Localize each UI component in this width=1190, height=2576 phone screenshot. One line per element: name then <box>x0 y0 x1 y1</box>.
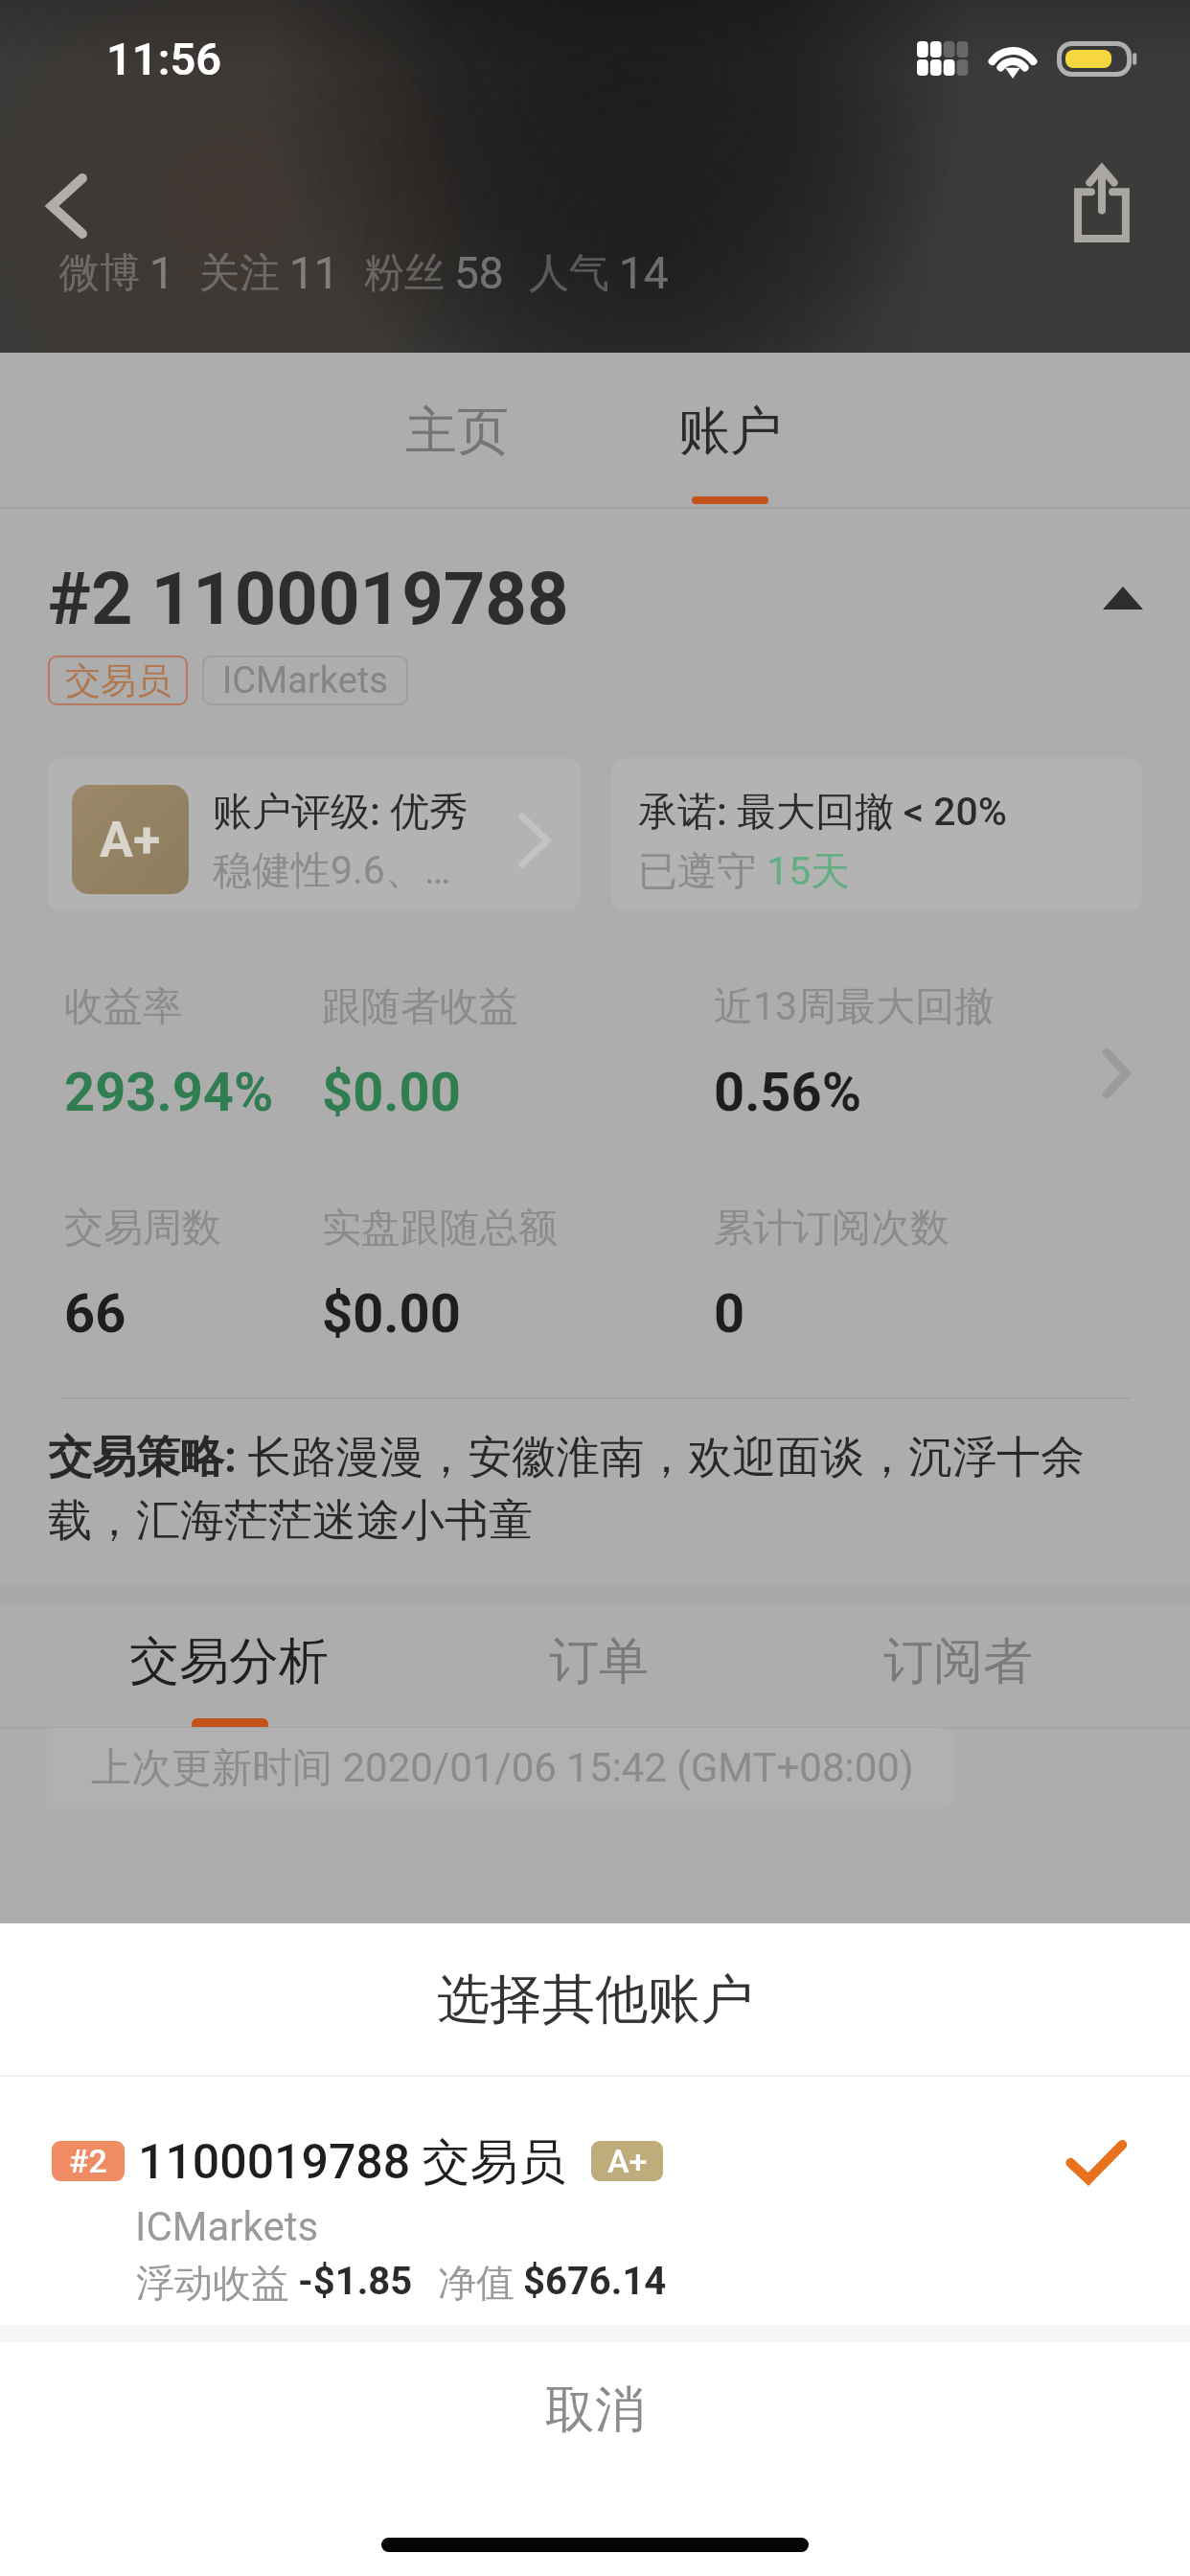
staticText: #2 <box>69 2142 107 2180</box>
button[interactable]: 承诺: 最大回撤 < 20% <box>611 758 1142 911</box>
staticText: 上次更新时间 2020/01/06 15:42 (GMT+08:00) <box>91 1743 914 1794</box>
button[interactable]: Collapse account <box>1079 554 1167 642</box>
staticText: 账户 <box>678 399 782 464</box>
staticText: 交易周数 <box>64 1204 221 1253</box>
staticText: 稳健性9.6、… <box>213 846 451 896</box>
button[interactable]: Back <box>21 160 113 252</box>
staticText: 11 <box>289 247 339 299</box>
staticText: 15天 <box>767 847 851 897</box>
staticText: 关注 <box>199 248 280 299</box>
staticText: $676.14 <box>523 2259 667 2304</box>
staticText: -$1.85 <box>298 2259 413 2304</box>
staticText: 累计订阅次数 <box>714 1204 950 1253</box>
staticText: 收益率 <box>64 982 182 1032</box>
button[interactable]: Selected account <box>1052 2118 1140 2206</box>
staticText: 0 <box>714 1282 745 1345</box>
button[interactable]: 订阅者 <box>853 1604 1064 1719</box>
button[interactable]: 交易分析 <box>124 1604 334 1719</box>
button[interactable]: 取消 <box>0 2338 1190 2482</box>
staticText: 订阅者 <box>883 1630 1033 1693</box>
button[interactable]: 选择其他账户 <box>0 1923 1190 2075</box>
staticText: 净值 <box>438 2259 515 2307</box>
staticText: 跟随者收益 <box>322 982 518 1032</box>
staticText: 1 <box>149 247 174 299</box>
staticText: 交易员 <box>65 658 172 703</box>
staticText: 66 <box>64 1282 126 1345</box>
staticText: 58 <box>454 247 504 299</box>
staticText: 实盘跟随总额 <box>322 1204 558 1253</box>
staticText: 293.94% <box>64 1061 274 1124</box>
staticText: $0.00 <box>322 1282 461 1345</box>
button[interactable]: 主页 <box>361 381 553 481</box>
staticText: #2 1100019788 <box>48 556 569 641</box>
staticText: 选择其他账户 <box>437 1966 753 2033</box>
staticText: $0.00 <box>322 1061 461 1124</box>
staticText: 0.56% <box>714 1061 862 1124</box>
staticText: ICMarkets <box>222 659 388 702</box>
staticText: 账户评级: 优秀 <box>213 788 469 838</box>
staticText: 取消 <box>545 2379 645 2442</box>
button[interactable]: 账户 <box>634 381 826 481</box>
button[interactable]: #2 <box>0 2077 1190 2325</box>
staticText: 1100019788 交易员 <box>138 2132 566 2193</box>
staticText: 粉丝 <box>364 248 445 299</box>
staticText: 人气 <box>529 248 609 299</box>
staticText: ICMarkets <box>135 2203 319 2250</box>
staticText: 14 <box>619 247 669 299</box>
button[interactable]: More statistics <box>1082 1039 1151 1108</box>
staticText: A+ <box>607 2142 648 2180</box>
staticText: A+ <box>100 811 161 869</box>
staticText: 微博 <box>59 248 140 299</box>
staticText: 已遵守 <box>638 847 767 897</box>
button[interactable]: 订单 <box>493 1604 704 1719</box>
button[interactable]: Share <box>1052 153 1152 253</box>
staticText: 浮动收益 <box>136 2259 289 2307</box>
staticText: 交易策略: 长路漫漫，安徽淮南，欢迎面谈，沉浮十余载，汇海茫茫迷途小书童 <box>48 1430 1145 1549</box>
staticText: 承诺: 最大回撤 < 20% <box>638 788 1008 838</box>
staticText: 订单 <box>549 1630 649 1693</box>
staticText: 近13周最大回撤 <box>714 982 995 1032</box>
staticText: 11:56 <box>106 33 222 85</box>
button[interactable]: 交易员 <box>48 655 188 705</box>
button[interactable]: A+ <box>47 758 581 911</box>
staticText: 交易分析 <box>129 1630 329 1693</box>
staticText: 主页 <box>405 399 509 464</box>
